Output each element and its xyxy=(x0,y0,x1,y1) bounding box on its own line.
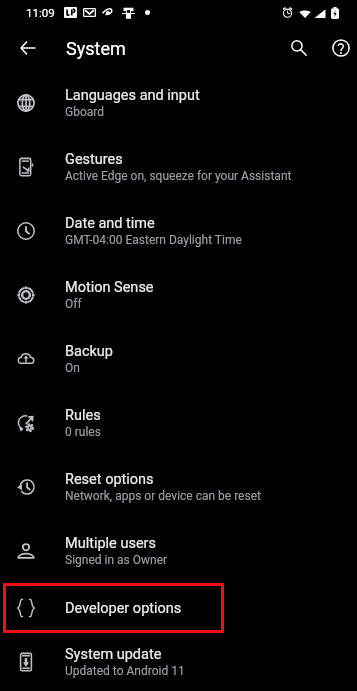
staticText: System update xyxy=(65,646,162,663)
staticText: Signed in as Owner xyxy=(65,553,168,567)
staticText: System xyxy=(66,38,126,59)
staticText: Date and time xyxy=(65,215,155,232)
button[interactable]: System update xyxy=(0,633,357,691)
staticText: Gboard xyxy=(65,105,105,119)
button[interactable]: Date and time xyxy=(0,199,357,263)
button[interactable]: Motion Sense xyxy=(0,263,357,327)
staticText: 0 rules xyxy=(65,425,101,439)
button[interactable]: Search xyxy=(282,31,316,65)
button[interactable]: Languages and input xyxy=(0,71,357,135)
staticText: Languages and input xyxy=(65,87,200,104)
staticText: Active Edge on, squeeze for your Assista… xyxy=(65,169,292,183)
staticText: Multiple users xyxy=(65,535,156,552)
staticText: Rules xyxy=(65,407,101,424)
staticText: Off xyxy=(65,297,82,311)
staticText: Reset options xyxy=(65,471,154,488)
staticText: Developer options xyxy=(65,600,182,617)
staticText: Updated to Android 11 xyxy=(65,664,185,678)
staticText: Motion Sense xyxy=(65,279,154,296)
staticText: Gestures xyxy=(65,151,123,168)
staticText: Network, apps or device can be reset xyxy=(65,489,261,503)
button[interactable]: Developer options xyxy=(0,583,357,633)
staticText: 11:09 xyxy=(26,6,55,19)
button[interactable]: Multiple users xyxy=(0,519,357,583)
staticText: Backup xyxy=(65,343,113,360)
button[interactable]: Gestures xyxy=(0,135,357,199)
button[interactable]: Back xyxy=(12,32,44,64)
staticText: GMT-04:00 Eastern Daylight Time xyxy=(65,233,242,247)
button[interactable]: Rules xyxy=(0,391,357,455)
button[interactable]: Reset options xyxy=(0,455,357,519)
staticText: On xyxy=(65,361,80,375)
button[interactable]: Backup xyxy=(0,327,357,391)
button[interactable]: Help xyxy=(324,31,357,65)
